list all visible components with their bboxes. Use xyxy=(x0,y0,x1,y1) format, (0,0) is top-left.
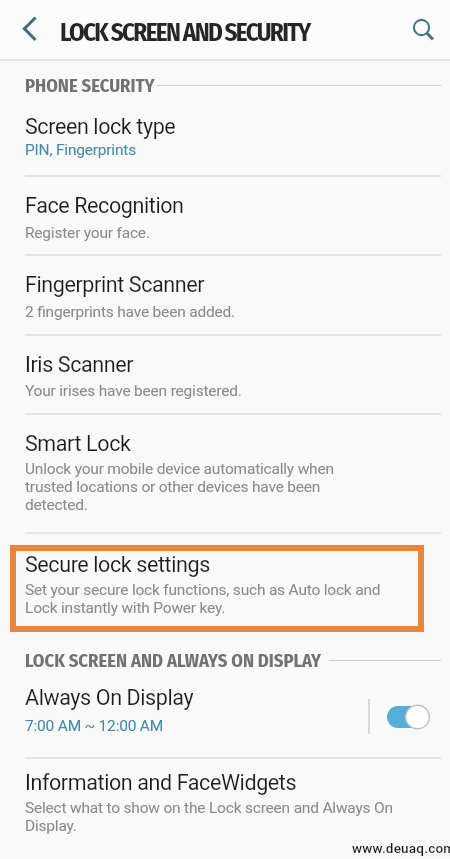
button[interactable] xyxy=(0,545,450,632)
staticText: www.deuaq.com xyxy=(352,840,450,856)
staticText: Secure lock settings xyxy=(25,552,210,577)
staticText: Screen lock type xyxy=(25,114,176,139)
button[interactable] xyxy=(6,6,54,54)
button[interactable] xyxy=(0,414,450,532)
button[interactable] xyxy=(396,4,446,54)
button[interactable] xyxy=(0,176,450,254)
staticText: Smart Lock xyxy=(25,431,131,456)
staticText: Set your secure lock functions, such as … xyxy=(25,581,381,617)
staticText: PHONE SECURITY xyxy=(25,75,155,97)
staticText: PIN, Fingerprints xyxy=(25,141,136,159)
staticText: Your irises have been registered. xyxy=(25,382,242,400)
button[interactable] xyxy=(0,107,450,175)
button[interactable] xyxy=(0,758,450,840)
button[interactable] xyxy=(0,255,450,334)
button[interactable] xyxy=(0,62,450,107)
button[interactable] xyxy=(383,702,435,732)
staticText: Information and FaceWidgets xyxy=(25,770,297,795)
staticText: Always On Display xyxy=(25,685,194,710)
staticText: Fingerprint Scanner xyxy=(25,272,205,297)
staticText: LOCK SCREEN AND ALWAYS ON DISPLAY xyxy=(25,650,322,672)
staticText: Register your face. xyxy=(25,224,150,242)
staticText: 7:00 AM ~ 12:00 AM xyxy=(25,717,164,735)
staticText: 2 fingerprints have been added. xyxy=(25,303,235,321)
staticText: Select what to show on the Lock screen a… xyxy=(25,799,393,835)
button[interactable] xyxy=(0,335,450,413)
staticText: Face Recognition xyxy=(25,193,184,218)
staticText: Iris Scanner xyxy=(25,352,134,377)
button[interactable] xyxy=(0,675,450,757)
staticText: Unlock your mobile device automatically … xyxy=(25,460,334,514)
staticText: LOCK SCREEN AND SECURITY xyxy=(60,18,310,48)
